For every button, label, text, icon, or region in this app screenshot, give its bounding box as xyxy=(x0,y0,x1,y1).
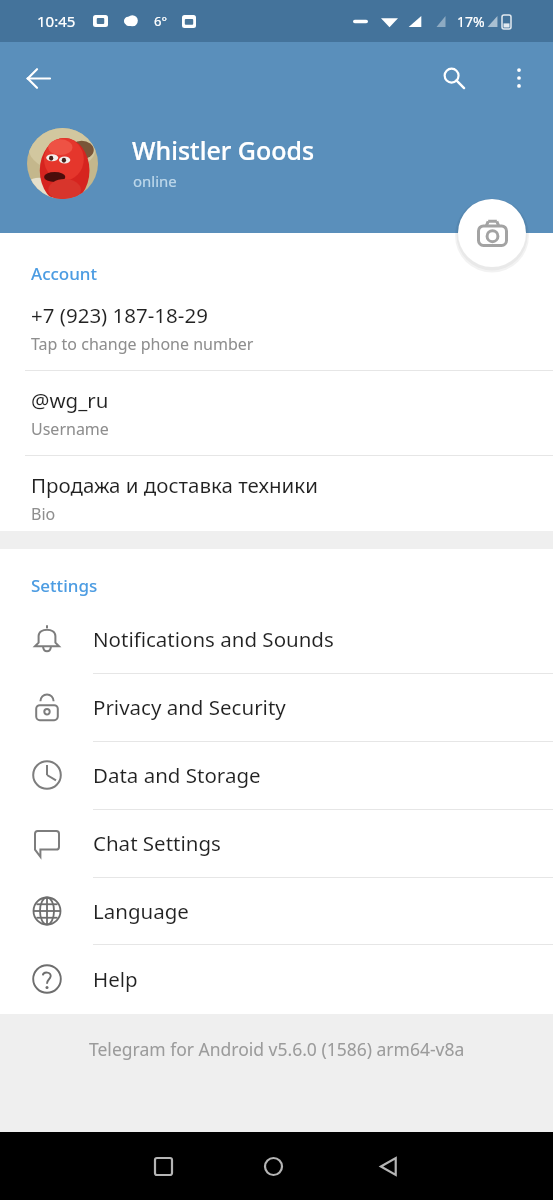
button[interactable]: More options xyxy=(495,54,543,102)
button[interactable]: Profile photo xyxy=(27,128,98,199)
staticText: Help xyxy=(93,965,138,993)
button[interactable]: Privacy and Security xyxy=(0,673,553,741)
button[interactable]: Change profile photo xyxy=(458,199,526,267)
staticText: Account xyxy=(31,262,98,285)
button[interactable]: Search xyxy=(430,54,478,102)
staticText: Notifications and Sounds xyxy=(93,625,334,653)
staticText: @wg_ru xyxy=(31,386,109,414)
staticText: Whistler Goods xyxy=(132,133,315,167)
staticText: Username xyxy=(31,418,109,440)
button[interactable]: Data and Storage xyxy=(0,741,553,809)
staticText: Chat Settings xyxy=(93,829,221,857)
staticText: Продажа и доставка техники xyxy=(31,471,318,499)
staticText: online xyxy=(133,171,177,191)
staticText: +7 (923) 187-18-29 xyxy=(31,301,208,329)
staticText: Bio xyxy=(31,503,56,525)
staticText: 17% xyxy=(457,12,485,31)
staticText: Settings xyxy=(31,574,98,597)
button[interactable]: Recent apps xyxy=(139,1142,187,1190)
button[interactable]: +7 (923) 187-18-29 xyxy=(0,285,553,370)
button[interactable]: Help xyxy=(0,944,553,1014)
button[interactable]: @wg_ru xyxy=(0,370,553,455)
staticText: 10:45 xyxy=(37,11,76,31)
staticText: Data and Storage xyxy=(93,761,261,789)
button[interactable]: Notifications and Sounds xyxy=(0,605,553,673)
staticText: Telegram for Android v5.6.0 (1586) arm64… xyxy=(89,1037,465,1061)
staticText: Privacy and Security xyxy=(93,693,286,721)
button[interactable]: Chat Settings xyxy=(0,809,553,877)
button[interactable]: Продажа и доставка техники xyxy=(0,455,553,531)
button[interactable]: Back xyxy=(364,1142,412,1190)
button[interactable]: Home xyxy=(249,1142,297,1190)
staticText: 6° xyxy=(154,12,168,30)
button[interactable]: Language xyxy=(0,877,553,944)
button[interactable]: Back xyxy=(14,54,62,102)
staticText: Language xyxy=(93,897,189,925)
staticText: Tap to change phone number xyxy=(31,333,254,355)
